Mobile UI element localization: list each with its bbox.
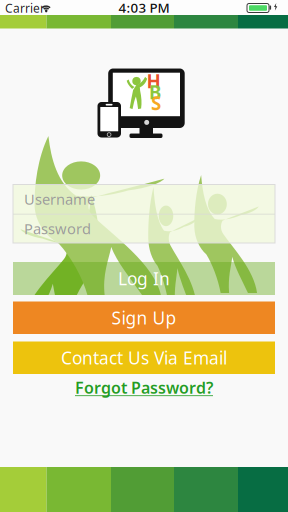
staticText: Username bbox=[24, 189, 95, 209]
staticText: H bbox=[146, 69, 160, 93]
staticText: S bbox=[151, 91, 161, 115]
button[interactable]: Sign Up bbox=[13, 301, 275, 334]
button[interactable]: Log In bbox=[13, 262, 275, 295]
button[interactable]: Contact Us Via Email bbox=[13, 341, 275, 374]
staticText: Password bbox=[24, 219, 91, 238]
button[interactable]: Forgot Password? bbox=[74, 378, 214, 397]
staticText: 4:03 PM bbox=[118, 0, 169, 16]
staticText: Forgot Password? bbox=[75, 377, 213, 398]
staticText: Sign Up bbox=[111, 306, 176, 329]
staticText: Carrier bbox=[5, 0, 45, 16]
staticText: Contact Us Via Email bbox=[61, 346, 227, 369]
staticText: Log In bbox=[118, 267, 170, 290]
staticText: B bbox=[149, 80, 161, 104]
